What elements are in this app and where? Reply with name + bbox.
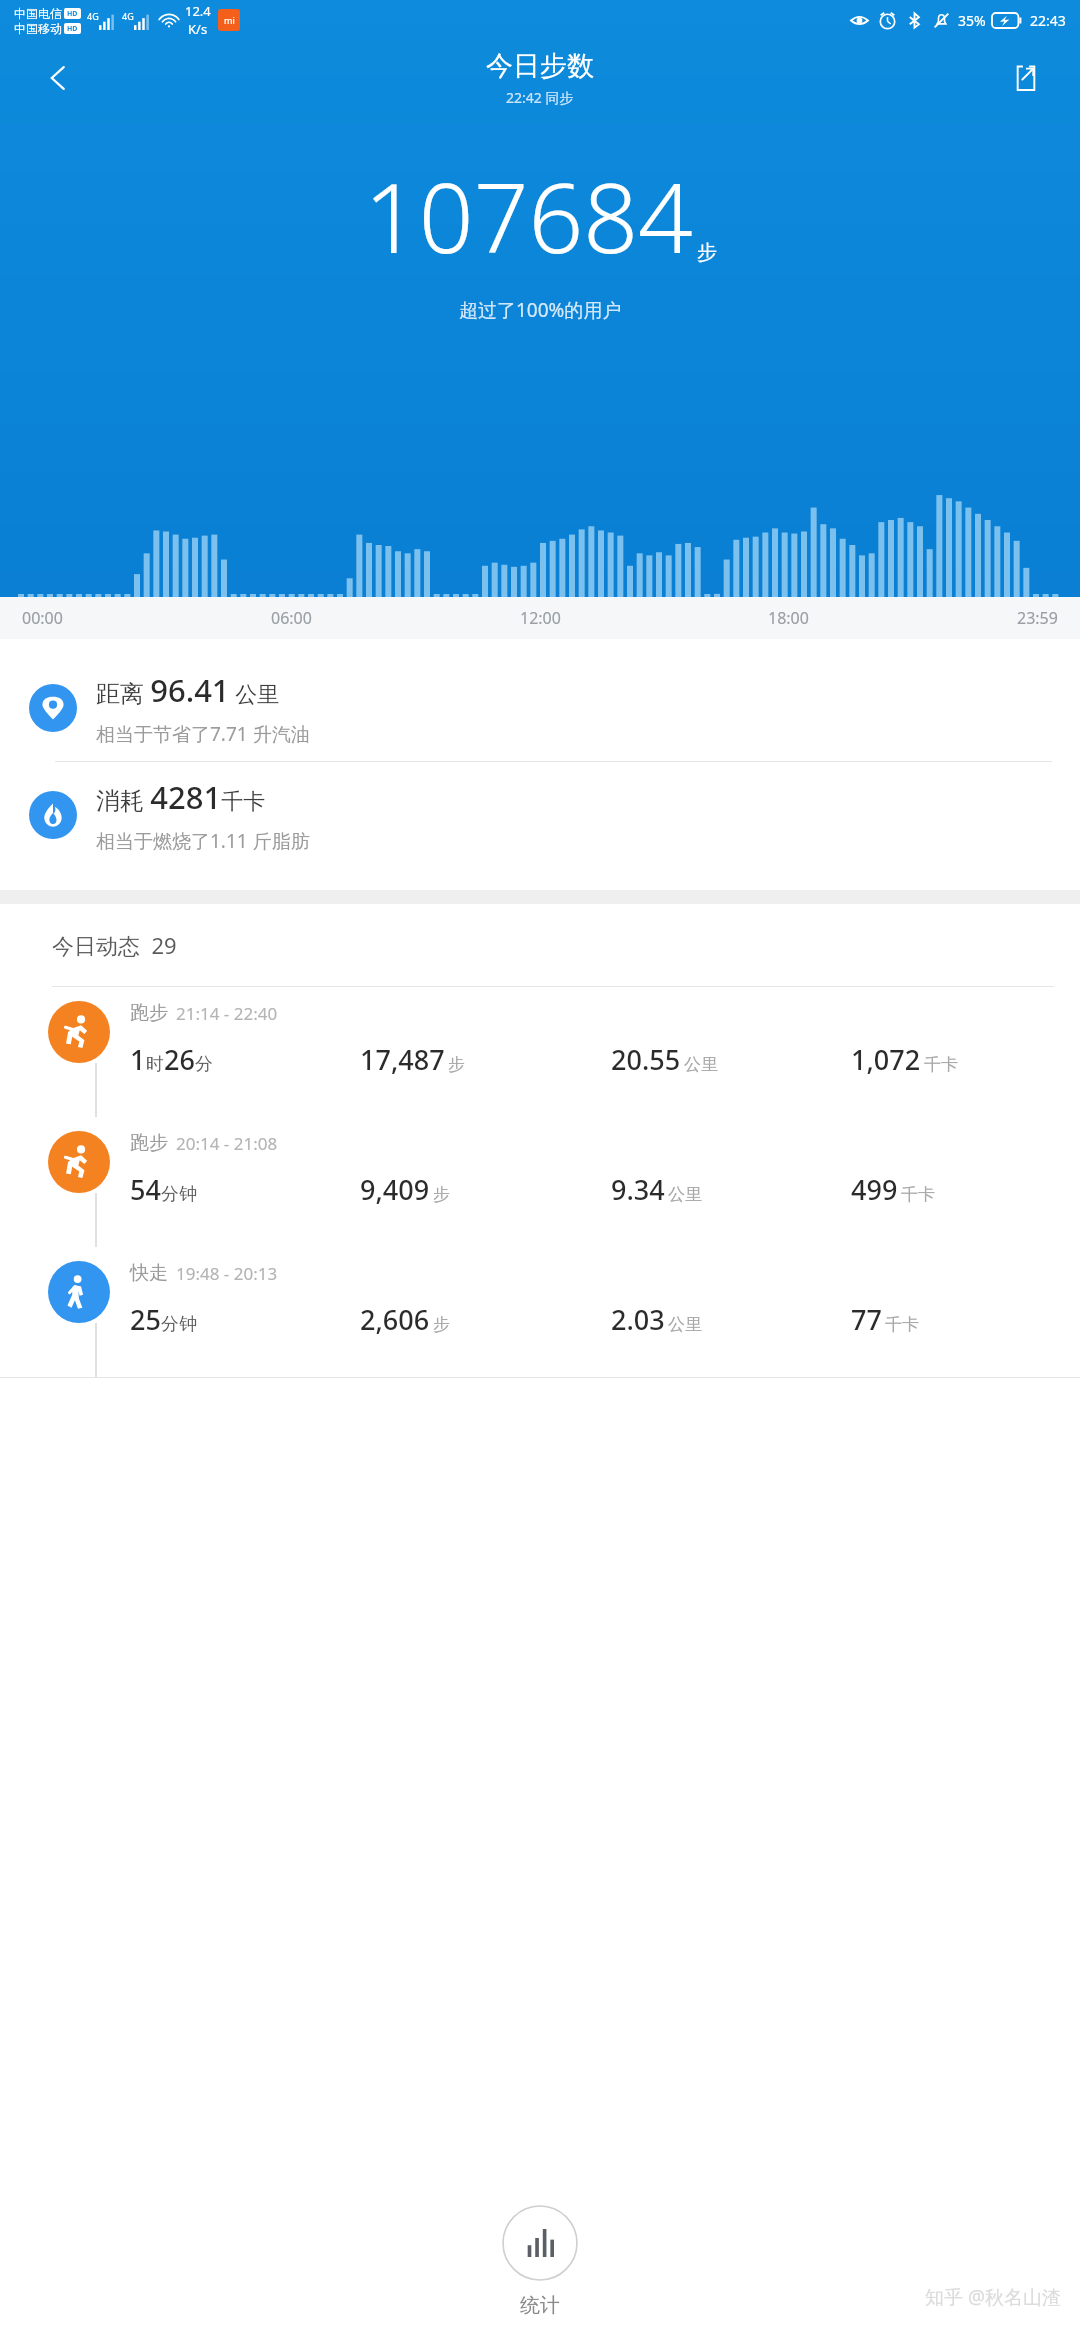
- other: Bluetooth: [906, 12, 923, 29]
- staticText: 4G: [122, 10, 134, 22]
- other: Silent mode: [932, 11, 951, 30]
- button[interactable]: 消耗 4281千卡: [0, 762, 1080, 868]
- staticText: 统计: [520, 2293, 560, 2318]
- staticText: 1: [130, 1041, 146, 1078]
- staticText: 17,487: [360, 1041, 445, 1078]
- staticText: 知乎 @秋名山渣: [925, 2284, 1062, 2310]
- staticText: 9,409: [360, 1171, 430, 1208]
- staticText: 9.34: [611, 1171, 665, 1208]
- staticText: 跑步: [130, 1131, 168, 1155]
- staticText: 12.4: [185, 2, 211, 20]
- staticText: 今日步数: [486, 49, 594, 83]
- staticText: 公里: [668, 1314, 702, 1335]
- staticText: 2.03: [611, 1301, 665, 1338]
- button[interactable]: 统计: [502, 2205, 578, 2318]
- staticText: 千卡: [901, 1184, 935, 1205]
- staticText: 26: [164, 1041, 195, 1078]
- staticText: 107684: [364, 150, 693, 281]
- staticText: 4G: [87, 10, 99, 22]
- staticText: 35%: [958, 11, 986, 30]
- staticText: 00:00: [22, 607, 63, 629]
- staticText: 今日动态 29: [52, 930, 177, 960]
- staticText: 06:00: [271, 607, 312, 629]
- staticText: 公里: [684, 1054, 718, 1075]
- staticText: 12:00: [520, 607, 561, 629]
- staticText: 499: [851, 1171, 898, 1208]
- staticText: HD: [67, 24, 78, 34]
- staticText: 步: [433, 1314, 450, 1335]
- button[interactable]: Back: [34, 54, 82, 102]
- button[interactable]: Share: [1002, 54, 1050, 102]
- staticText: 中国移动: [14, 21, 62, 36]
- button[interactable]: 跑步: [0, 1117, 1080, 1247]
- button[interactable]: 跑步: [0, 987, 1080, 1117]
- button[interactable]: 快走: [0, 1247, 1080, 1377]
- staticText: 步: [433, 1184, 450, 1205]
- staticText: 22:42 同步: [506, 88, 574, 107]
- staticText: 分钟: [161, 1183, 197, 1206]
- staticText: 2,606: [360, 1301, 430, 1338]
- staticText: 步: [448, 1054, 465, 1075]
- staticText: 77: [851, 1301, 882, 1338]
- staticText: K/s: [188, 20, 208, 38]
- staticText: 23:59: [1017, 607, 1058, 629]
- staticText: 相当于燃烧了1.11 斤脂肪: [96, 828, 310, 854]
- staticText: 20:14 - 21:08: [176, 1132, 278, 1155]
- staticText: 千卡: [885, 1314, 919, 1335]
- staticText: 20.55: [611, 1041, 681, 1078]
- staticText: 快走: [130, 1261, 168, 1285]
- staticText: 中国电信: [14, 6, 62, 21]
- other: Alarm: [878, 11, 897, 30]
- staticText: HD: [67, 9, 78, 19]
- staticText: 1,072: [851, 1041, 921, 1078]
- staticText: mi: [224, 14, 235, 26]
- staticText: 19:48 - 20:13: [176, 1262, 278, 1285]
- staticText: 分: [195, 1053, 213, 1076]
- staticText: 消耗 4281千卡: [96, 776, 266, 818]
- staticText: 21:14 - 22:40: [176, 1002, 278, 1025]
- other: Eye protection: [850, 11, 869, 30]
- staticText: 相当于节省了7.71 升汽油: [96, 721, 310, 747]
- staticText: 步: [697, 240, 717, 265]
- staticText: 跑步: [130, 1001, 168, 1025]
- staticText: 54: [130, 1171, 161, 1208]
- staticText: 22:43: [1030, 11, 1066, 30]
- button[interactable]: 距离 96.41 公里: [0, 655, 1080, 761]
- staticText: 18:00: [768, 607, 809, 629]
- staticText: 千卡: [924, 1054, 958, 1075]
- staticText: 超过了100%的用户: [459, 297, 622, 323]
- staticText: 25: [130, 1301, 161, 1338]
- staticText: 时: [146, 1053, 164, 1076]
- staticText: 公里: [668, 1184, 702, 1205]
- staticText: 分钟: [161, 1313, 197, 1336]
- staticText: 距离 96.41 公里: [96, 669, 280, 711]
